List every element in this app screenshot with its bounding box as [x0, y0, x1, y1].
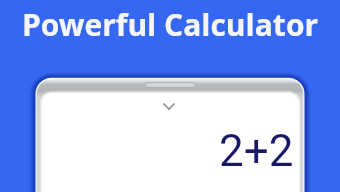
staticText: Powerful Calculator	[0, 4, 340, 45]
staticText: 2+2	[219, 125, 294, 177]
